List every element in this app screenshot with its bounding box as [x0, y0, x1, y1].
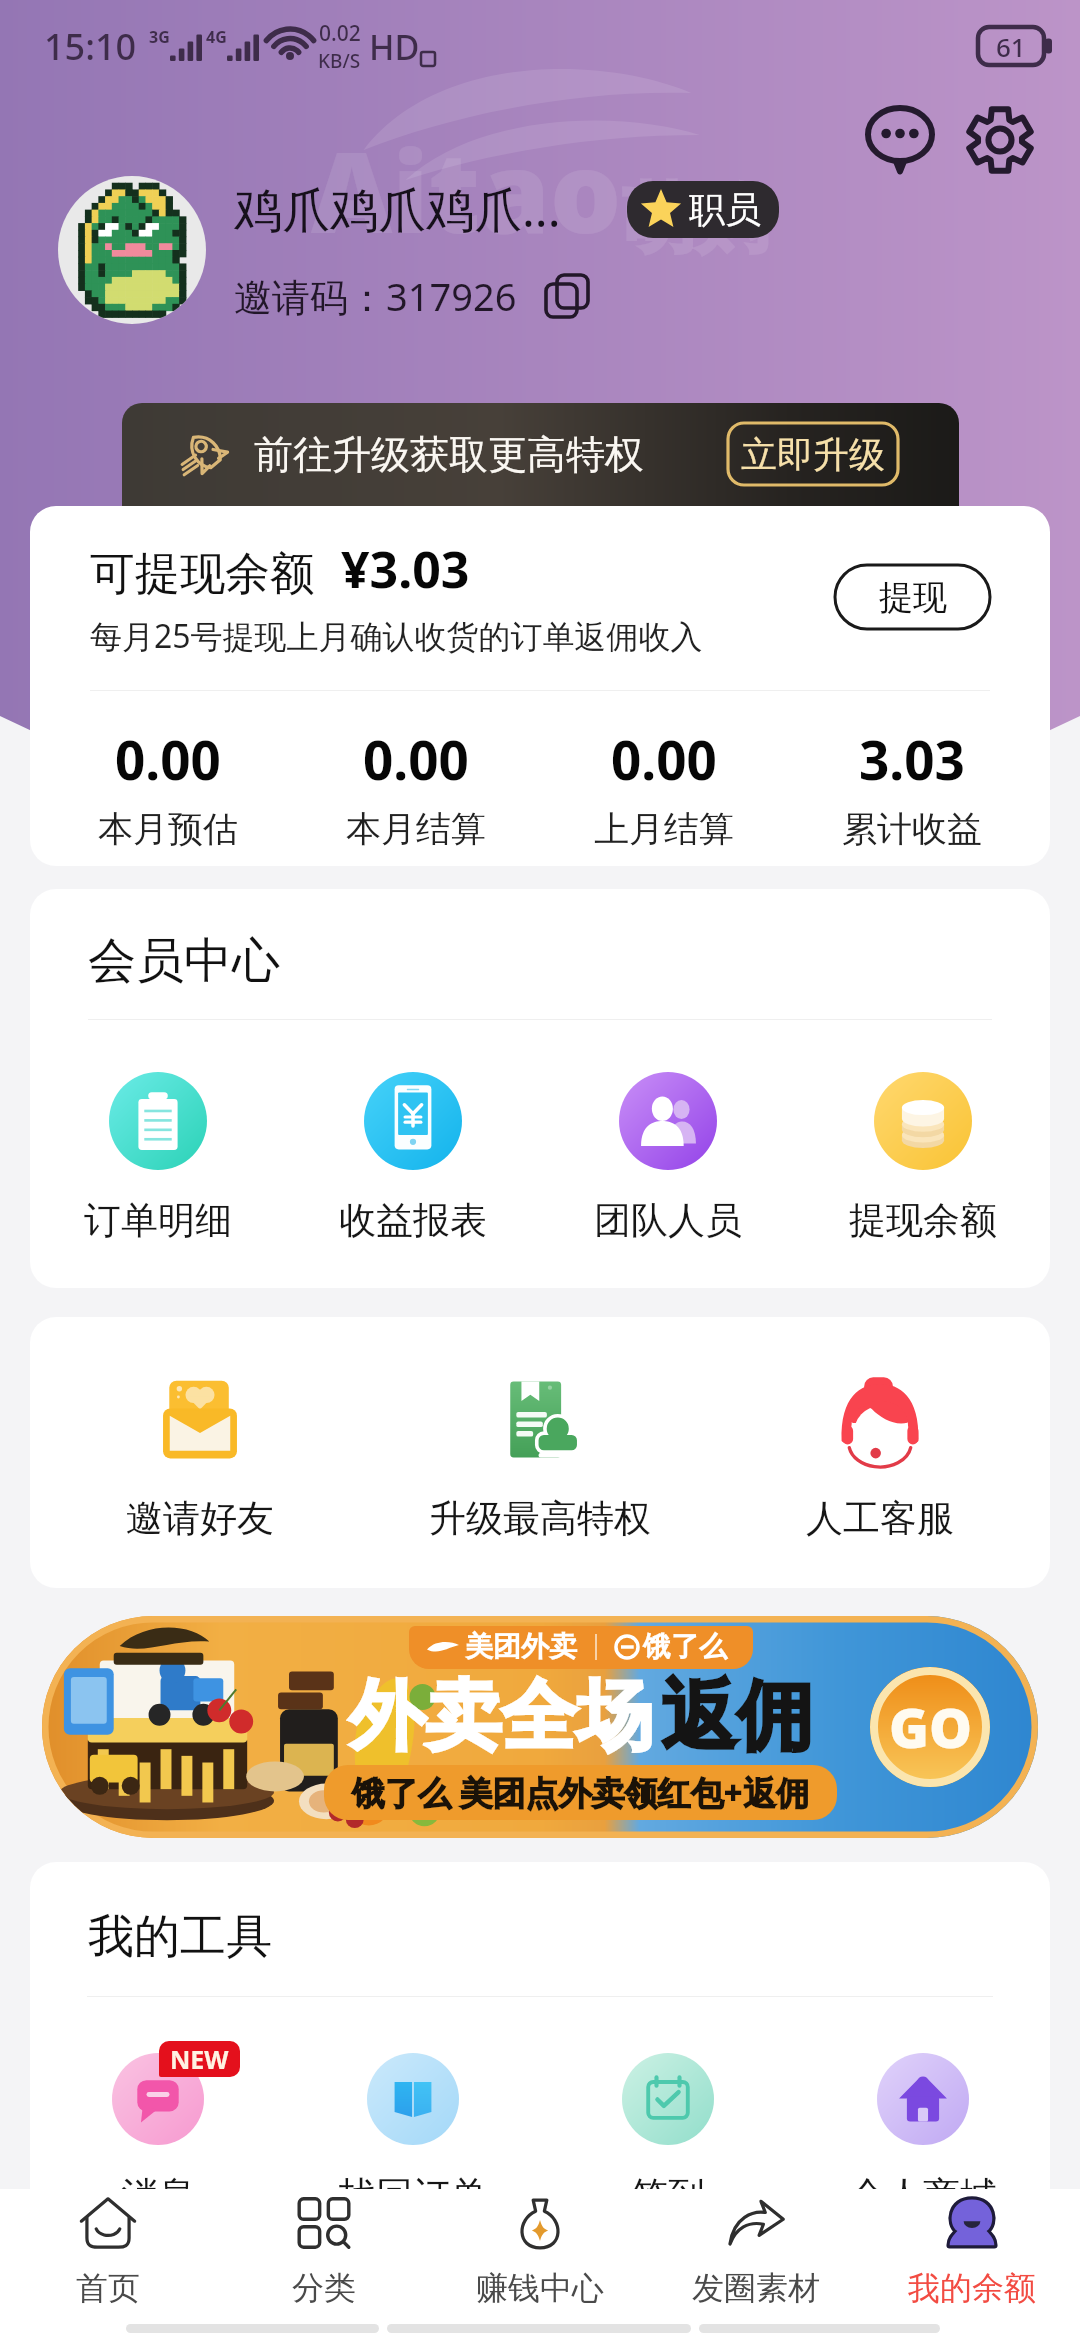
staticText: 15:10	[44, 22, 137, 71]
staticText: 邀请好友	[126, 1495, 274, 1542]
button[interactable]: 首页	[0, 2189, 216, 2311]
button[interactable]: 0.00	[44, 723, 292, 851]
staticText: GO	[889, 1690, 972, 1764]
staticText: 提现余额	[849, 1197, 997, 1244]
button[interactable]: 签到	[540, 2053, 795, 2219]
button[interactable]: 收益报表	[285, 1072, 540, 1244]
button[interactable]: 个人商城	[795, 2053, 1050, 2219]
button[interactable]: 提现余额	[795, 1072, 1050, 1244]
button[interactable]: 美团外卖	[42, 1616, 1038, 1838]
button[interactable]: 升级最高特权	[370, 1372, 710, 1542]
button[interactable]: 0.00	[292, 723, 540, 851]
button[interactable]: 我的余额	[864, 2189, 1080, 2311]
staticText: 0.00	[363, 723, 469, 795]
staticText: 发圈素材	[692, 2268, 820, 2308]
staticText: 累计收益	[842, 807, 982, 851]
staticText: 收益报表	[339, 1197, 487, 1244]
staticText: 61	[996, 29, 1026, 64]
staticText: ¥3.03	[341, 535, 470, 603]
staticText: 人工客服	[806, 1495, 954, 1542]
staticText: 签到	[631, 2172, 705, 2219]
button[interactable]: 分类	[216, 2189, 432, 2311]
staticText: 美团外卖	[465, 1629, 577, 1664]
button[interactable]: Settings	[952, 92, 1048, 188]
staticText: 鸡爪鸡爪鸡爪...	[234, 176, 561, 242]
staticText: 0.00	[611, 723, 717, 795]
staticText: 3.03	[859, 723, 965, 795]
staticText: 个人商城	[849, 2172, 997, 2219]
staticText: 团队人员	[594, 1197, 742, 1244]
staticText: 消息	[121, 2172, 195, 2219]
staticText: 提现	[879, 576, 947, 619]
staticText: HD	[369, 24, 420, 70]
staticText: KB/S	[318, 48, 361, 74]
button[interactable]: 3.03	[788, 723, 1036, 851]
staticText: 会员中心	[88, 931, 280, 991]
button[interactable]: 人工客服	[710, 1372, 1050, 1542]
button[interactable]: 邀请好友	[30, 1372, 370, 1542]
staticText: 0.00	[115, 723, 221, 795]
button[interactable]: 订单明细	[30, 1072, 285, 1244]
staticText: 4G	[206, 26, 227, 48]
staticText: 饿了么 美团点外卖领红包+返佣	[352, 1770, 809, 1815]
staticText: 上月结算	[594, 807, 734, 851]
button[interactable]: NEW	[30, 2053, 285, 2219]
staticText: 可提现余额	[90, 546, 315, 603]
button[interactable]: 找回订单	[285, 2053, 540, 2219]
staticText: 我的余额	[908, 2268, 1036, 2308]
button[interactable]: 立即升级	[728, 423, 898, 485]
staticText: 找回订单	[339, 2172, 487, 2219]
staticText: 立即升级	[741, 432, 885, 477]
staticText: 3G	[149, 26, 170, 48]
staticText: 升级最高特权	[429, 1495, 651, 1542]
button[interactable]: Messages	[852, 92, 948, 188]
staticText: 萌购	[622, 173, 770, 266]
button[interactable]: 0.00	[540, 723, 788, 851]
staticText: 每月25号提现上月确认收货的订单返佣收入	[90, 614, 703, 658]
staticText: 赚钱中心	[476, 2268, 604, 2308]
button[interactable]: 赚钱中心	[432, 2189, 648, 2311]
button[interactable]: 团队人员	[540, 1072, 795, 1244]
staticText: NEW	[170, 2042, 229, 2076]
staticText: 首页	[76, 2268, 140, 2308]
staticText: 分类	[292, 2268, 356, 2308]
staticText: 我的工具	[88, 1908, 272, 1966]
button[interactable]: 职员	[627, 181, 779, 238]
button[interactable]: 发圈素材	[648, 2189, 864, 2311]
staticText: 订单明细	[84, 1197, 232, 1244]
staticText: 返佣	[661, 1669, 813, 1765]
staticText: 职员	[689, 187, 761, 232]
staticText: 饿了么	[643, 1629, 727, 1664]
staticText: 外卖全场	[349, 1669, 653, 1765]
staticText: 邀请码：317926	[234, 270, 517, 322]
button[interactable]: Copy invite code	[539, 268, 595, 324]
staticText: 前往升级获取更高特权	[254, 430, 644, 479]
button[interactable]: 提现	[835, 565, 990, 629]
staticText: 本月预估	[98, 807, 238, 851]
staticText: 0.02	[319, 19, 361, 48]
button[interactable]: 前往升级获取更高特权	[122, 403, 959, 543]
staticText: Aitao	[311, 113, 622, 266]
staticText: 本月结算	[346, 807, 486, 851]
